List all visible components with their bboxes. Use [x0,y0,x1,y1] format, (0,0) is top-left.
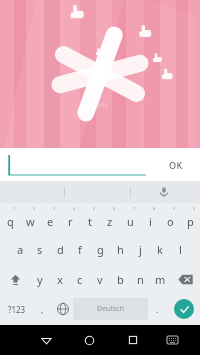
staticText: f [78,242,82,257]
button[interactable]: 1 [0,205,20,234]
button[interactable]: s [30,234,50,264]
button[interactable]: Backspace [170,264,200,294]
button[interactable]: 8 [140,205,160,234]
staticText: p [187,214,194,229]
staticText: e [47,214,54,229]
staticText: d [57,242,64,257]
staticText: ?123 [8,304,26,315]
button[interactable]: n [130,264,150,294]
staticText: 2 [33,206,36,211]
staticText: k [157,242,163,257]
button[interactable]: a [10,234,30,264]
button[interactable]: 7 [120,205,140,234]
button[interactable]: f [70,234,90,264]
button[interactable]: Voice input [131,181,196,203]
staticText: j [139,242,142,257]
button[interactable]: b [110,264,130,294]
staticText: b [117,272,124,287]
button[interactable]: 6 [100,205,120,234]
staticText: z [107,214,113,229]
button[interactable]: c [70,264,90,294]
button[interactable]: m [150,264,170,294]
button[interactable] [8,154,146,176]
staticText: 6 [113,206,116,211]
button[interactable]: h [110,234,130,264]
button[interactable]: Home [68,325,111,355]
staticText: LIKES [92,102,109,109]
staticText: 0 [193,206,196,211]
button[interactable]: 0 [180,205,200,234]
staticText: q [7,214,14,229]
staticText: . [156,303,159,315]
button[interactable]: x [50,264,70,294]
staticText: n [137,272,144,287]
staticText: 3 [53,206,56,211]
button[interactable]: 3 [40,205,60,234]
button[interactable]: Enter [167,294,200,324]
button[interactable]: Change language [52,294,73,324]
button[interactable]: OK [152,148,200,181]
staticText: 9 [173,206,176,211]
button[interactable]: g [90,234,110,264]
button[interactable]: Switch keyboard [154,325,191,355]
staticText: 5 [93,206,96,211]
staticText: g [97,242,104,257]
button[interactable]: Hide keyboard [25,325,68,355]
button[interactable]: k [150,234,170,264]
staticText: o [167,214,174,229]
button[interactable]: . [148,294,167,324]
staticText: r [68,214,73,229]
staticText: 1 [13,206,16,211]
staticText: 4 [73,206,76,211]
staticText: u [127,214,134,229]
button[interactable]: 2 [20,205,40,234]
staticText: t [88,214,92,229]
staticText: c [77,272,83,287]
staticText: , [41,303,44,315]
button[interactable]: 4 [60,205,80,234]
staticText: h [117,242,124,257]
button[interactable]: l [170,234,190,264]
staticText: s [37,242,43,257]
button[interactable]: y [30,264,50,294]
staticText: 8 [153,206,156,211]
button[interactable]: d [50,234,70,264]
button[interactable]: Deutsch [73,298,148,320]
button[interactable]: v [90,264,110,294]
staticText: OK [169,159,183,171]
button[interactable]: Shift [0,264,30,294]
staticText: i [149,214,152,229]
staticText: y [37,272,43,287]
staticText: a [17,242,24,257]
staticText: Deutsch [97,304,124,314]
staticText: l [179,242,182,257]
button[interactable]: ?123 [0,294,33,324]
button[interactable]: 9 [160,205,180,234]
staticText: w [26,214,35,229]
staticText: x [57,272,63,287]
button[interactable]: Recents [111,325,154,355]
button[interactable]: , [33,294,52,324]
staticText: 7 [133,206,136,211]
button[interactable]: 5 [80,205,100,234]
staticText: m [155,272,166,287]
staticText: v [97,272,103,287]
button[interactable]: j [130,234,150,264]
